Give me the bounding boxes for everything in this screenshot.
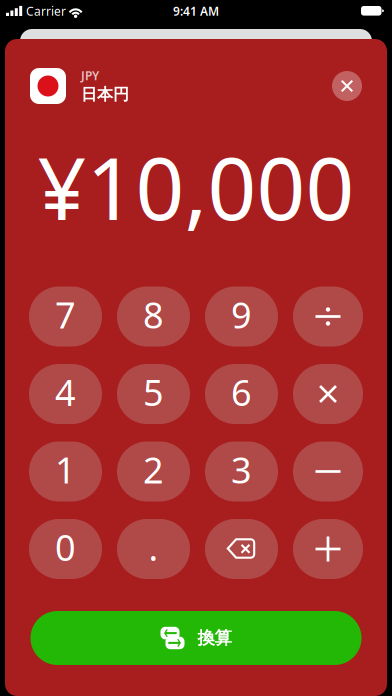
staticText: 日本円 xyxy=(81,85,129,104)
staticText: 2 xyxy=(143,446,164,493)
button[interactable]: 7 xyxy=(29,286,102,346)
button[interactable]: Delete xyxy=(205,519,278,579)
button[interactable]: 6 xyxy=(205,364,278,424)
staticText: 6 xyxy=(231,368,252,416)
button[interactable]: 1 xyxy=(29,441,102,501)
staticText: JPY xyxy=(81,68,99,84)
button[interactable]: Plus xyxy=(293,519,363,579)
staticText: Carrier xyxy=(26,3,66,19)
button[interactable]: Divide xyxy=(293,286,363,346)
staticText: 7 xyxy=(55,291,76,338)
staticText: 5 xyxy=(143,368,164,416)
button[interactable]: 換算 xyxy=(30,611,361,665)
button[interactable]: Minus xyxy=(293,441,363,501)
staticText: 4 xyxy=(55,368,76,416)
button[interactable]: Close xyxy=(332,71,362,101)
staticText: 8 xyxy=(143,291,164,338)
staticText: 3 xyxy=(231,446,252,493)
button[interactable]: 0 xyxy=(29,519,102,579)
staticText: 0 xyxy=(55,523,76,571)
button[interactable]: Multiply xyxy=(293,364,363,424)
staticText: ¥10,000 xyxy=(37,130,354,244)
button[interactable]: 5 xyxy=(117,364,190,424)
button[interactable]: 3 xyxy=(205,441,278,501)
staticText: 1 xyxy=(55,446,76,493)
staticText: 9:41 AM xyxy=(173,3,219,19)
staticText: 換算 xyxy=(197,627,231,649)
button[interactable]: . xyxy=(117,519,190,579)
button[interactable]: 4 xyxy=(29,364,102,424)
button[interactable]: 2 xyxy=(117,441,190,501)
button[interactable]: 9 xyxy=(205,286,278,346)
staticText: 9 xyxy=(231,291,252,338)
staticText: . xyxy=(148,523,158,571)
button[interactable]: 8 xyxy=(117,286,190,346)
